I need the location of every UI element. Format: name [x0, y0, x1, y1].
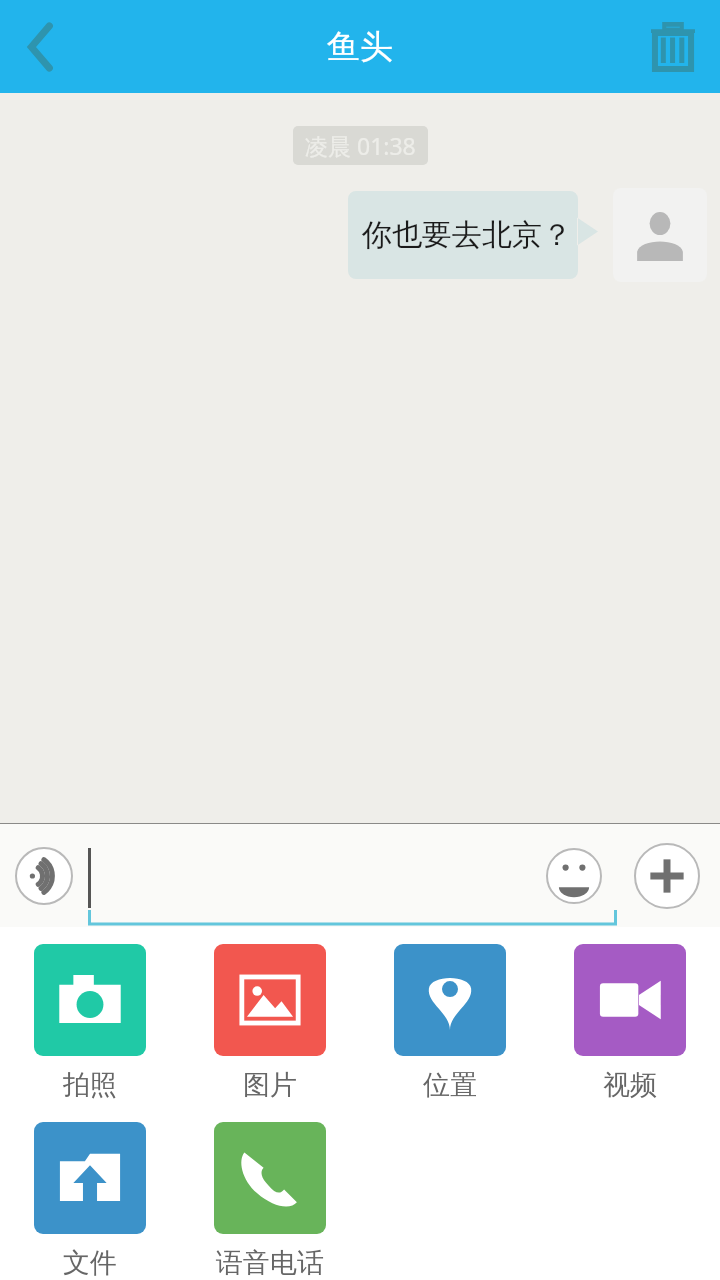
staticText: 鱼头 [327, 26, 393, 68]
staticText: 图片 [243, 1068, 297, 1102]
staticText: 文件 [63, 1246, 117, 1280]
button[interactable]: 语音电话 [180, 1122, 360, 1280]
staticText: 位置 [423, 1068, 477, 1102]
staticText: 你也要去北京？ [362, 216, 572, 254]
button[interactable]: Delete [638, 12, 708, 82]
button[interactable]: Avatar [613, 188, 707, 282]
button[interactable]: 拍照 [0, 944, 180, 1102]
staticText: 拍照 [63, 1068, 117, 1102]
staticText: 视频 [603, 1068, 657, 1102]
staticText: 凌晨 01:38 [305, 130, 416, 161]
button[interactable]: 你也要去北京？ [348, 191, 598, 279]
button[interactable]: 视频 [540, 944, 720, 1102]
staticText: 语音电话 [216, 1246, 324, 1280]
button[interactable]: 文件 [0, 1122, 180, 1280]
button[interactable]: Voice message [15, 847, 73, 905]
button[interactable]: 图片 [180, 944, 360, 1102]
button[interactable]: Back [6, 12, 76, 82]
button[interactable]: 位置 [360, 944, 540, 1102]
button[interactable]: More [634, 843, 700, 909]
button[interactable]: Emoji [546, 848, 602, 904]
